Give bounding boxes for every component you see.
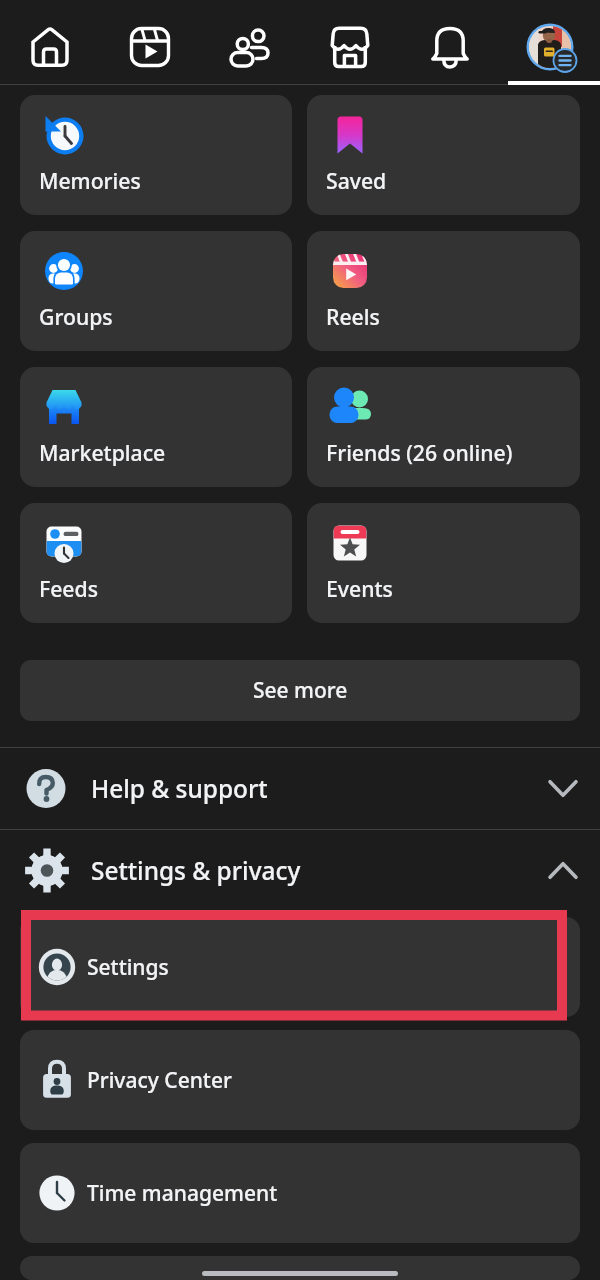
button[interactable]	[20, 1256, 580, 1280]
button[interactable]: Friends	[200, 0, 300, 85]
staticText: Time management	[87, 1179, 278, 1208]
button[interactable]: Memories	[20, 95, 292, 215]
staticText: Marketplace	[39, 438, 166, 467]
staticText: See more	[253, 676, 348, 705]
staticText: Events	[326, 574, 393, 603]
staticText: Groups	[39, 302, 113, 331]
button[interactable]: Reels	[307, 231, 580, 351]
button[interactable]: Home	[0, 0, 100, 85]
button[interactable]: Video	[100, 0, 200, 85]
staticText: Settings	[87, 953, 169, 982]
button[interactable]: Feeds	[20, 503, 292, 623]
button[interactable]: Help & support	[0, 748, 600, 829]
button[interactable]: Marketplace	[20, 367, 292, 487]
button[interactable]: Saved	[307, 95, 580, 215]
button[interactable]: Friends (26 online)	[307, 367, 580, 487]
staticText: Reels	[326, 302, 380, 331]
button[interactable]: Settings & privacy	[0, 830, 600, 911]
staticText: Privacy Center	[87, 1066, 232, 1095]
button[interactable]: Time management	[20, 1143, 580, 1243]
button[interactable]: Marketplace	[300, 0, 400, 85]
button[interactable]: Menu	[500, 0, 600, 85]
staticText: Friends (26 online)	[326, 438, 513, 467]
button[interactable]: Groups	[20, 231, 292, 351]
staticText: Settings & privacy	[91, 854, 301, 887]
button[interactable]: Settings	[20, 917, 580, 1017]
button[interactable]: Notifications	[400, 0, 500, 85]
button[interactable]: Events	[307, 503, 580, 623]
staticText: Memories	[39, 166, 141, 195]
button[interactable]: Privacy Center	[20, 1030, 580, 1130]
staticText: Feeds	[39, 574, 98, 603]
button[interactable]: See more	[20, 660, 580, 721]
staticText: Saved	[326, 166, 387, 195]
staticText: Help & support	[91, 772, 268, 805]
